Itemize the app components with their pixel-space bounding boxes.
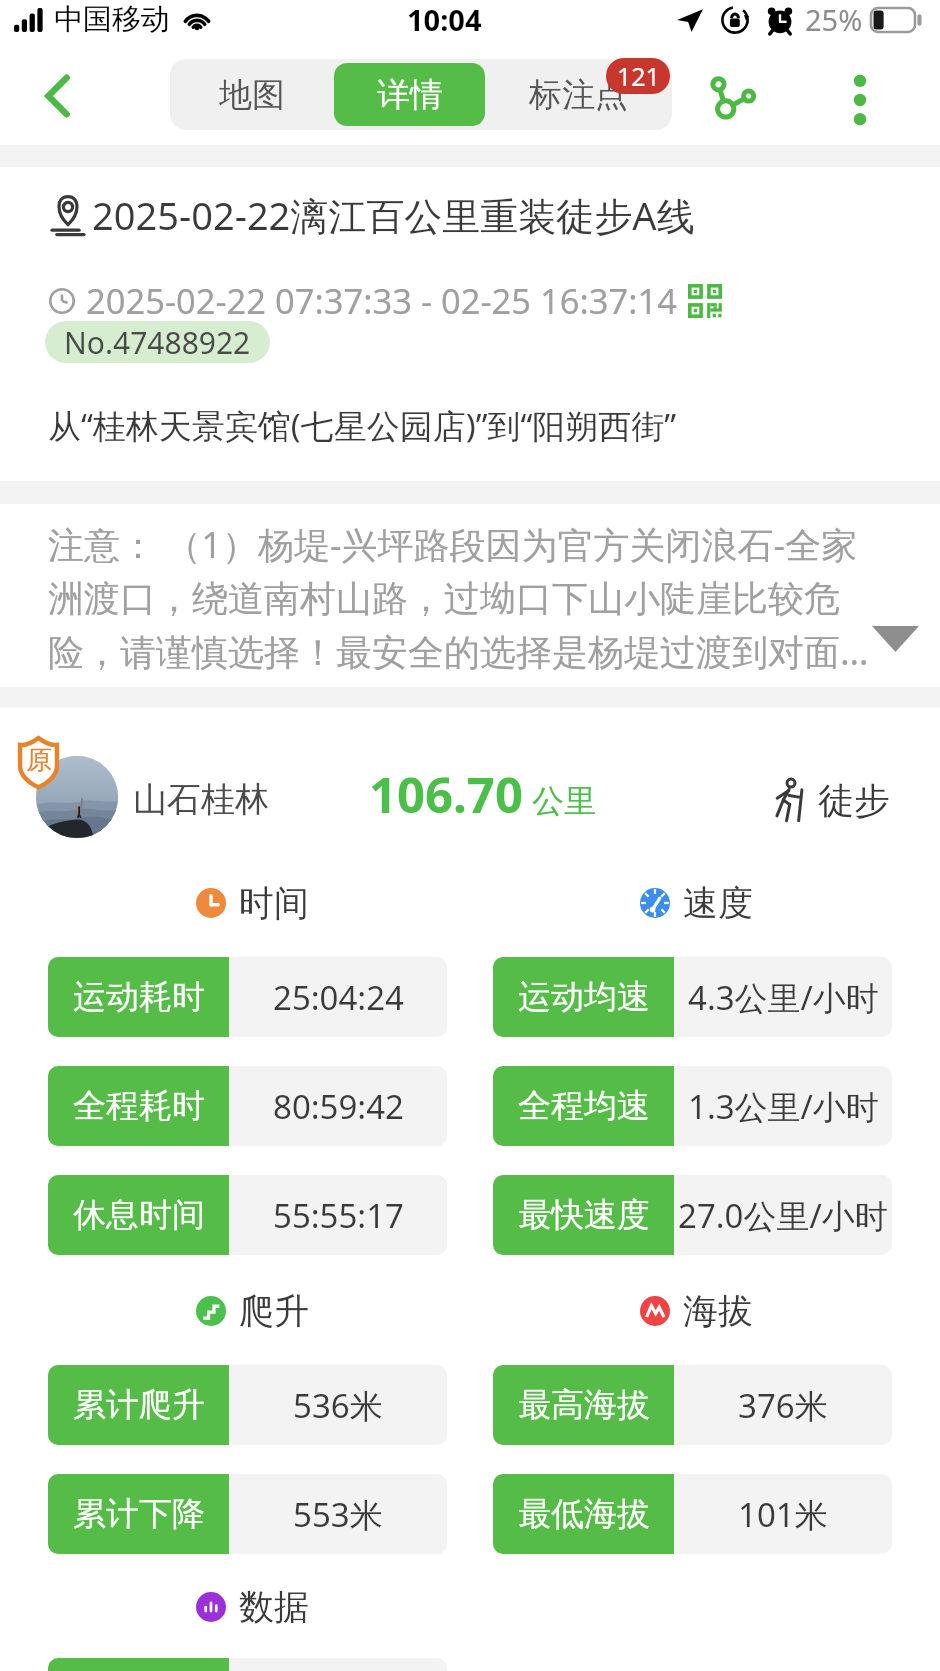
button[interactable]: User avatar: [36, 756, 118, 838]
staticText: 中国移动: [54, 1, 170, 38]
staticText: 标注点: [529, 74, 628, 116]
staticText: 地图: [219, 74, 285, 116]
button[interactable]: 全程耗时: [48, 1066, 447, 1146]
staticText: 海拔: [683, 1289, 753, 1333]
button[interactable]: 休息时间: [48, 1175, 447, 1255]
staticText: 休息时间: [73, 1194, 205, 1236]
staticText: 10:04: [407, 0, 482, 39]
staticText: 101米: [738, 1492, 828, 1537]
button[interactable]: 最高海拔: [493, 1365, 892, 1445]
staticText: 2025-02-22 07:37:33 - 02-25 16:37:14: [86, 277, 677, 324]
staticText: 数据: [239, 1585, 309, 1629]
staticText: 山石桂林: [133, 778, 269, 821]
staticText: 爬升: [239, 1289, 309, 1333]
staticText: 1.3公里/小时: [688, 1084, 879, 1129]
staticText: No.47488922: [64, 322, 251, 363]
button[interactable]: 详情: [334, 63, 485, 126]
staticText: 时间: [239, 881, 309, 925]
button[interactable]: 累计爬升: [48, 1365, 447, 1445]
staticText: 80:59:42: [273, 1084, 404, 1129]
button[interactable]: Expand: [866, 614, 924, 664]
staticText: 25%: [805, 0, 863, 39]
staticText: 累计下降: [73, 1493, 205, 1535]
button[interactable]: 标注点: [485, 59, 672, 130]
staticText: 速度: [683, 881, 753, 925]
staticText: 运动均速: [518, 976, 650, 1018]
staticText: 详情: [377, 74, 443, 116]
staticText: 从“桂林天景宾馆(七星公园店)”到“阳朔西街”: [48, 403, 677, 448]
staticText: 4.3公里/小时: [688, 975, 879, 1020]
button[interactable]: More options: [820, 55, 900, 145]
staticText: 运动耗时: [73, 976, 205, 1018]
staticText: 最高海拔: [518, 1384, 650, 1426]
staticText: 376米: [738, 1383, 828, 1428]
staticText: 55:55:17: [273, 1193, 404, 1238]
button[interactable]: 累计下降: [48, 1474, 447, 1554]
button[interactable]: 地图: [170, 59, 334, 130]
staticText: 536米: [293, 1383, 383, 1428]
button[interactable]: 最低海拔: [493, 1474, 892, 1554]
button[interactable]: QR code: [683, 279, 727, 323]
button[interactable]: 全程均速: [493, 1066, 892, 1146]
staticText: 25:04:24: [273, 975, 404, 1020]
staticText: 27.0公里/小时: [678, 1193, 888, 1238]
staticText: 2025-02-22漓江百公里重装徒步A线: [92, 189, 695, 241]
staticText: 徒步: [818, 778, 890, 823]
button[interactable]: No.47488922: [64, 321, 251, 363]
staticText: 全程耗时: [73, 1085, 205, 1127]
staticText: 106.70: [369, 761, 523, 828]
staticText: 注意： （1）杨堤-兴坪路段因为官方关闭浪石-全家洲渡口，绕道南村山路，过坳口下…: [48, 520, 880, 676]
button[interactable]: 平均心率: [48, 1658, 447, 1671]
staticText: 原: [26, 744, 52, 777]
staticText: 最快速度: [518, 1194, 650, 1236]
staticText: 公里: [532, 781, 596, 821]
button[interactable]: 最快速度: [493, 1175, 892, 1255]
button[interactable]: Share: [693, 55, 773, 145]
button[interactable]: Back: [18, 51, 98, 141]
button[interactable]: 运动均速: [493, 957, 892, 1037]
button[interactable]: 运动耗时: [48, 957, 447, 1037]
staticText: 全程均速: [518, 1085, 650, 1127]
staticText: 553米: [293, 1492, 383, 1537]
staticText: 累计爬升: [73, 1384, 205, 1426]
staticText: 121: [617, 59, 660, 93]
staticText: 最低海拔: [518, 1493, 650, 1535]
